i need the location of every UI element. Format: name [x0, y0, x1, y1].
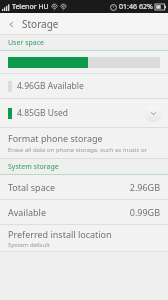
staticText: Preferred install location [8, 228, 112, 240]
button[interactable]: Total space [0, 175, 168, 199]
staticText: System storage [8, 162, 59, 172]
staticText: 4.96GB Available [17, 80, 84, 92]
button[interactable]: Format phone storage [0, 128, 168, 158]
button[interactable]: 4.85GB Used [0, 99, 168, 127]
button[interactable]: Preferred install location [0, 225, 168, 251]
button[interactable]: Back [0, 13, 22, 35]
staticText: User space [8, 38, 45, 48]
staticText: 4.85GB Used [17, 107, 145, 119]
staticText: 01:46 [119, 2, 137, 12]
staticText: Telenor HU [12, 2, 49, 12]
staticText: Available [8, 206, 129, 218]
staticText: Total space [8, 181, 129, 193]
staticText: System default [8, 241, 50, 249]
button[interactable]: 4.96GB Available [0, 74, 168, 98]
button[interactable]: Expand used storage details [145, 105, 162, 122]
staticText: 0.99GB [129, 206, 160, 218]
button[interactable]: Available [0, 200, 168, 224]
staticText: Erase all data on phone storage, such as… [8, 146, 160, 154]
staticText: 62% [139, 2, 153, 12]
staticText: Storage [22, 17, 59, 31]
staticText: Format phone storage [8, 132, 103, 144]
staticText: 2.96GB [129, 181, 160, 193]
